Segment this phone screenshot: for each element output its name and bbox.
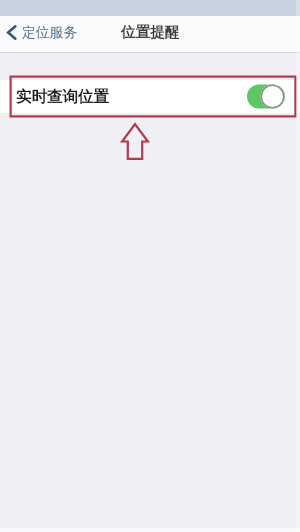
button[interactable]: 实时查询位置 bbox=[0, 80, 300, 113]
staticText: 实时查询位置 bbox=[16, 87, 109, 107]
staticText: 位置提醒 bbox=[121, 23, 179, 41]
button[interactable]: 定位服务 bbox=[0, 18, 86, 47]
button[interactable]: 实时查询位置 开关 bbox=[247, 84, 285, 109]
staticText: 定位服务 bbox=[22, 24, 78, 41]
